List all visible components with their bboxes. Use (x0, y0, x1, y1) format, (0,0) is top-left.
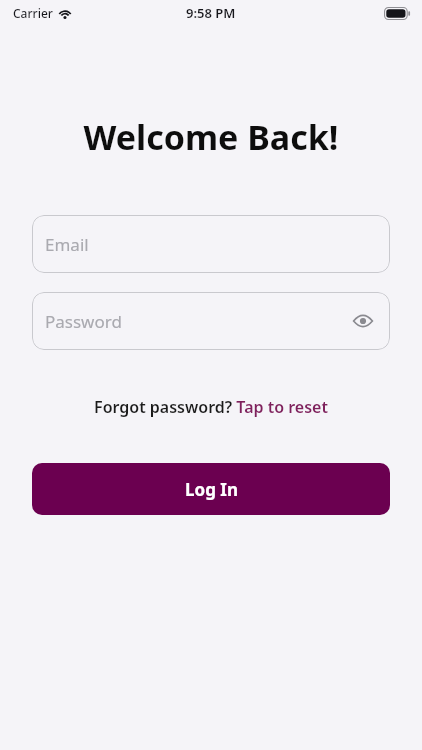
button[interactable]: Forgot password? Tap to reset (94, 396, 328, 418)
button[interactable]: Email (32, 215, 390, 273)
button[interactable]: Show password (350, 308, 376, 334)
staticText: 9:58 PM (186, 4, 236, 22)
staticText: Carrier (13, 5, 53, 21)
staticText: Email (45, 233, 89, 256)
button[interactable]: Log In (32, 463, 390, 515)
button[interactable]: Password (32, 292, 390, 350)
staticText: Log In (185, 478, 238, 501)
staticText: Welcome Back! (0, 114, 422, 160)
staticText: Forgot password? Tap to reset (94, 396, 328, 418)
staticText: Password (45, 310, 122, 333)
